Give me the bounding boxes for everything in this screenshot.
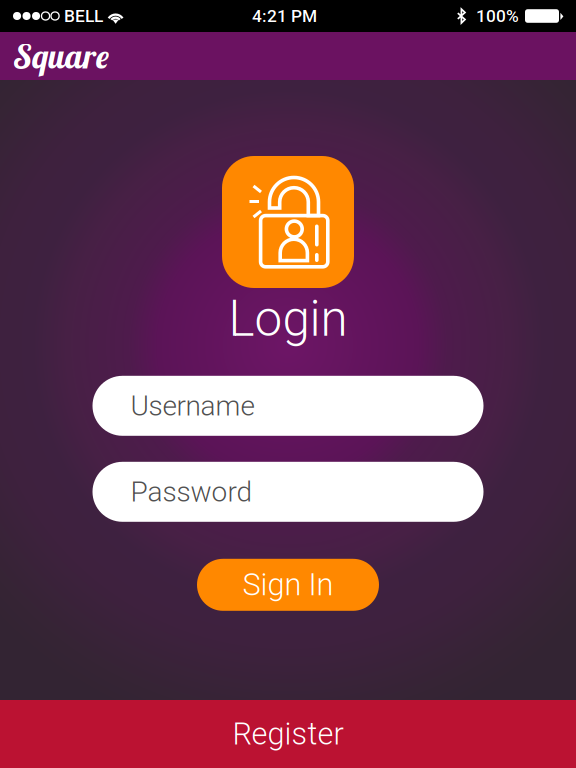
button[interactable]: Password: [92, 462, 483, 522]
staticText: 100%: [476, 6, 519, 26]
staticText: Square: [14, 35, 109, 77]
staticText: Sign In: [242, 567, 333, 603]
staticText: Username: [130, 389, 254, 422]
staticText: 4:21 PM: [252, 6, 317, 26]
staticText: Login: [228, 290, 347, 348]
staticText: Register: [232, 716, 343, 752]
staticText: Password: [130, 475, 252, 508]
button[interactable]: Sign In: [197, 559, 379, 611]
button[interactable]: Register: [0, 700, 576, 768]
button[interactable]: Username: [92, 376, 483, 436]
button[interactable]: Square: [0, 32, 119, 80]
staticText: BELL: [64, 6, 103, 26]
